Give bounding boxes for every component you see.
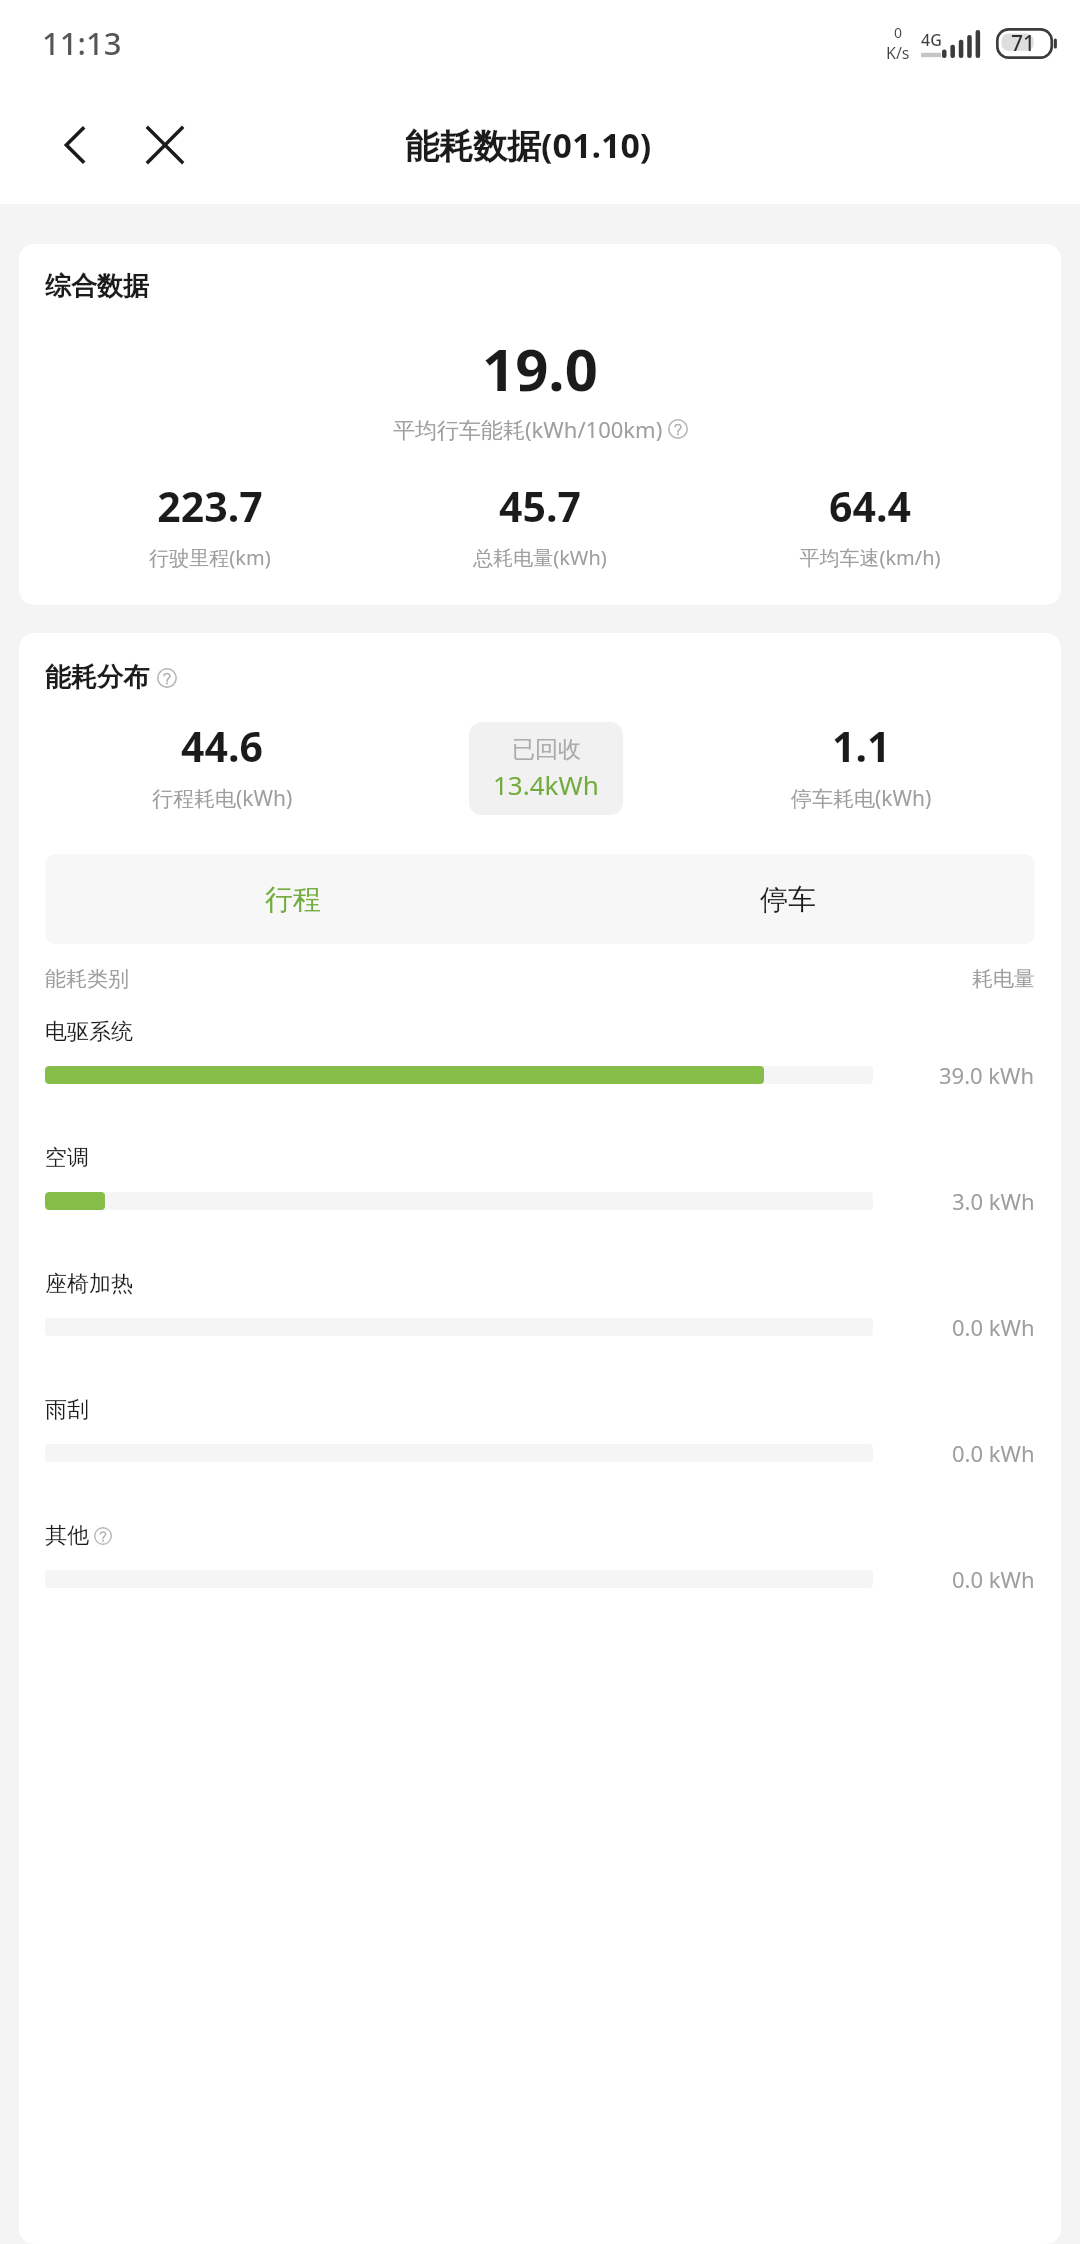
staticText: 停车耗电(kWh) — [791, 784, 932, 813]
staticText: 3.0 kWh — [952, 1186, 1035, 1216]
button[interactable]: Close — [126, 106, 204, 184]
staticText: 其他 — [45, 1522, 89, 1550]
staticText: 综合数据 — [45, 270, 149, 303]
staticText: 耗电量 — [972, 966, 1035, 992]
staticText: 45.7 — [499, 478, 581, 534]
button[interactable]: 停车 — [540, 854, 1035, 944]
staticText: 行驶里程(km) — [149, 544, 271, 571]
staticText: 雨刮 — [45, 1396, 89, 1424]
staticText: 71 — [1011, 29, 1036, 58]
staticText: 座椅加热 — [45, 1270, 133, 1298]
staticText: 行程 — [265, 882, 321, 917]
staticText: 19.0 — [482, 329, 598, 408]
staticText: 行程耗电(kWh) — [152, 784, 293, 813]
staticText: 13.4kWh — [493, 767, 599, 802]
staticText: 总耗电量(kWh) — [473, 544, 607, 571]
staticText: 能耗数据(01.10) — [405, 122, 652, 168]
staticText: 已回收 — [512, 735, 581, 764]
staticText: 1.1 — [832, 718, 891, 774]
staticText: 223.7 — [157, 478, 263, 534]
staticText: 平均行车能耗(kWh/100km) — [393, 414, 663, 444]
staticText: 11:13 — [42, 22, 122, 64]
staticText: 能耗分布 — [45, 661, 149, 694]
staticText: 平均车速(km/h) — [799, 544, 941, 571]
staticText: 停车 — [760, 882, 816, 917]
staticText: 0.0 kWh — [952, 1312, 1035, 1342]
staticText: 44.6 — [181, 718, 263, 774]
button[interactable]: Back — [36, 106, 114, 184]
staticText: 39.0 kWh — [939, 1060, 1035, 1090]
staticText: 0.0 kWh — [952, 1564, 1035, 1594]
staticText: K/s — [886, 42, 910, 64]
staticText: 0.0 kWh — [952, 1438, 1035, 1468]
staticText: 0 — [894, 23, 903, 42]
staticText: 4G — [921, 29, 942, 51]
staticText: 64.4 — [829, 478, 911, 534]
staticText: 空调 — [45, 1144, 89, 1172]
staticText: 能耗类别 — [45, 966, 129, 992]
button[interactable]: 行程 — [45, 854, 540, 944]
staticText: 电驱系统 — [45, 1018, 133, 1046]
